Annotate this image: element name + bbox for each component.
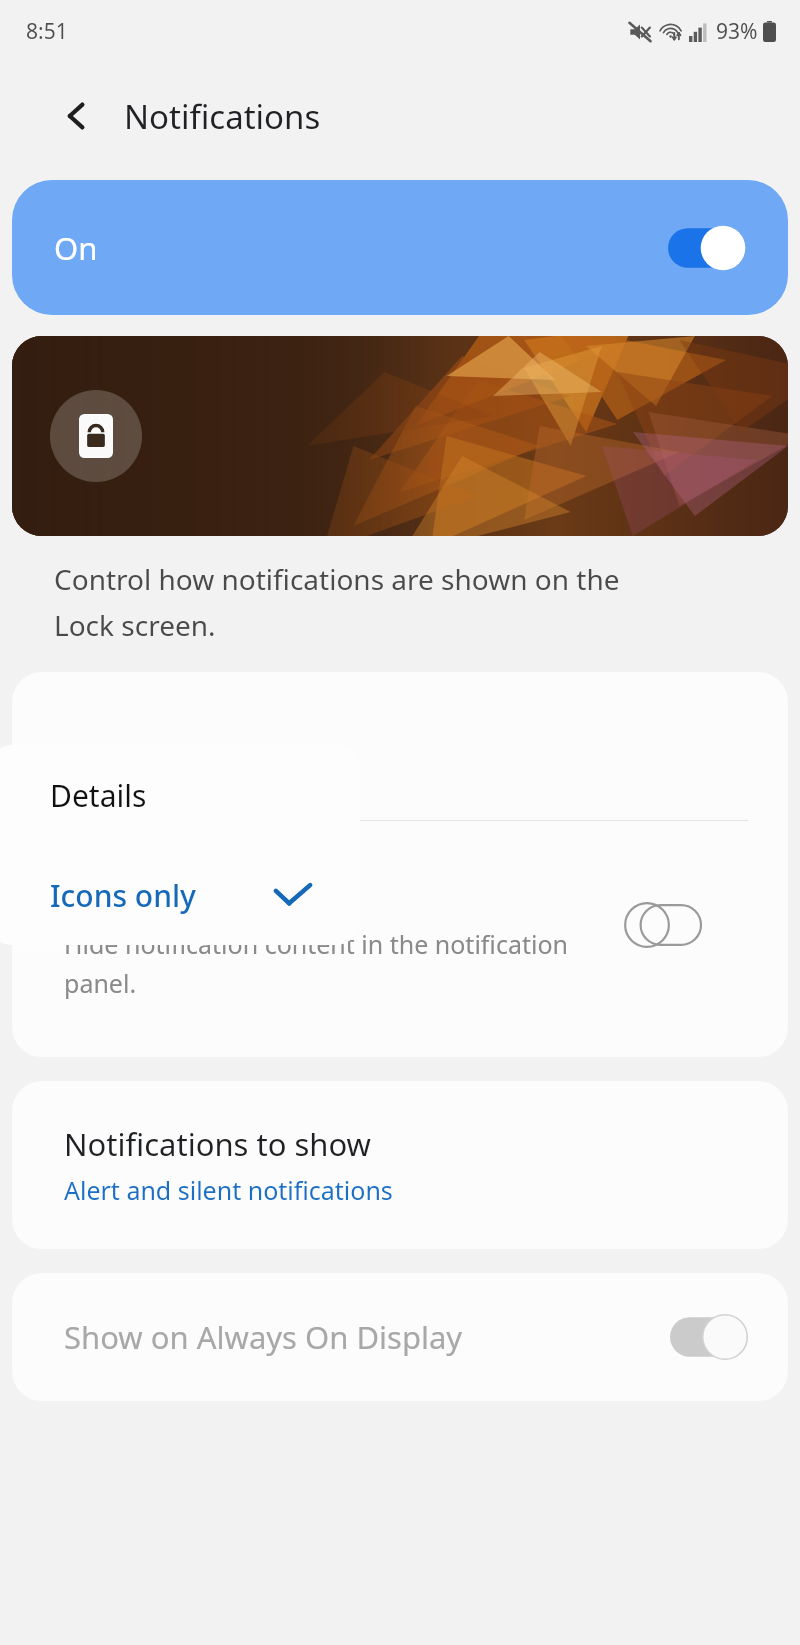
staticText: Show on Always On Display	[64, 1316, 463, 1358]
button[interactable]: Icons only	[0, 845, 360, 945]
staticText: Icons only	[50, 875, 196, 916]
button[interactable]: Back	[50, 89, 104, 143]
button[interactable]	[12, 336, 788, 536]
staticText: Hide content	[64, 878, 246, 919]
staticText: 93%	[716, 17, 758, 46]
button[interactable]: Show on Always On Display	[12, 1273, 788, 1401]
button[interactable]: Notifications to show	[12, 1081, 788, 1249]
staticText: Control how notifications are shown on t…	[54, 560, 620, 644]
staticText: Hide notification content in the notific…	[64, 927, 618, 1001]
button[interactable]: Hide content	[12, 821, 788, 1057]
button[interactable]	[12, 672, 788, 820]
staticText: Details	[50, 775, 147, 816]
staticText: Alert and silent notifications	[64, 1173, 393, 1207]
staticText: Notifications	[124, 94, 321, 139]
staticText: Notifications to show	[64, 1123, 371, 1165]
button[interactable]: On	[12, 180, 788, 315]
staticText: 8:51	[26, 17, 68, 46]
button[interactable]: Details	[0, 745, 360, 845]
staticText: On	[54, 227, 98, 269]
